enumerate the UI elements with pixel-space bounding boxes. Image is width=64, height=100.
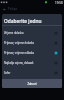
button[interactable]: Prijevoz, vrijeme dolaska xyxy=(2,38,62,48)
button[interactable]: Zatvori xyxy=(2,79,62,88)
button[interactable]: Vrijeme dolaska xyxy=(2,28,62,38)
staticText: Odaberite jednu xyxy=(4,18,42,24)
staticText: 19:58 xyxy=(55,1,63,5)
button[interactable]: Prijevoz, vrijeme odlaska xyxy=(2,48,62,58)
button[interactable]: Back xyxy=(1,6,7,12)
button[interactable]: Najbolja ocjena, dolazak xyxy=(2,58,62,68)
staticText: Sefer xyxy=(4,71,54,75)
staticText: Prikaz xyxy=(8,7,18,11)
button[interactable]: Sefer xyxy=(2,68,62,78)
staticText: Prijevoz, vrijeme dolaska xyxy=(4,41,54,45)
staticText: Zatvori xyxy=(27,82,37,86)
staticText: Vrijeme dolaska xyxy=(4,31,54,35)
staticText: Najbolja ocjena, dolazak xyxy=(4,61,54,65)
staticText: Prijevoz, vrijeme odlaska xyxy=(4,51,54,55)
